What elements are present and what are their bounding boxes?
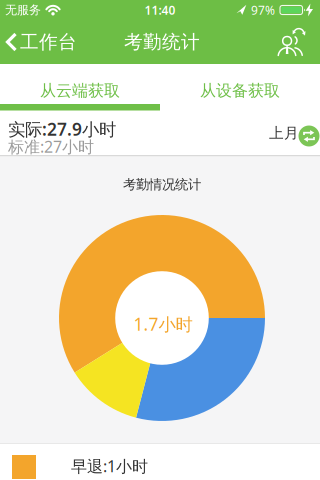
staticText: 标准:27小时 xyxy=(8,136,94,157)
staticText: 早退:1小时 xyxy=(71,455,148,477)
staticText: 上月 xyxy=(269,124,299,142)
staticText: 从云端获取 xyxy=(40,81,120,101)
staticText: 无服务 xyxy=(5,3,41,17)
button[interactable]: 工作台 xyxy=(6,20,96,64)
button[interactable]: 从设备获取 xyxy=(160,64,320,110)
staticText: 从设备获取 xyxy=(200,81,280,101)
staticText: 考勤情况统计 xyxy=(123,176,201,193)
staticText: 实际:27.9小时 xyxy=(8,117,116,140)
button[interactable]: 从云端获取 xyxy=(0,64,160,110)
staticText: 11:40 xyxy=(144,2,175,18)
button[interactable]: 切换月份 xyxy=(298,125,319,146)
staticText: 工作台 xyxy=(20,30,77,53)
staticText: 考勤统计 xyxy=(124,30,200,53)
staticText: 1.7小时 xyxy=(133,312,192,335)
button[interactable]: 切换人员 xyxy=(275,26,307,60)
staticText: 97% xyxy=(251,2,275,18)
